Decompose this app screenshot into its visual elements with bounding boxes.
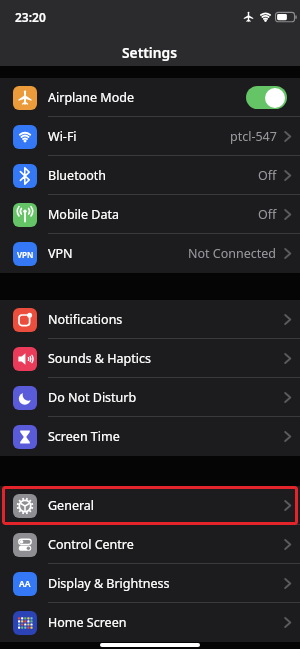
staticText: Off [258,167,277,184]
staticText: Not Connected [188,245,277,262]
staticText: VPN [48,245,73,262]
staticText: General [48,497,95,514]
staticText: 23:20 [15,9,46,25]
staticText: Sounds & Haptics [48,350,151,367]
button[interactable]: Screen Time [0,417,300,456]
staticText: VPN [17,249,34,260]
button[interactable]: General [0,486,300,525]
staticText: Control Centre [48,536,134,553]
button[interactable]: AA [0,564,300,603]
staticText: Display & Brightness [48,575,170,592]
staticText: Settings [122,43,178,62]
staticText: Notifications [48,311,123,328]
staticText: Off [258,206,277,223]
staticText: Airplane Mode [48,89,134,106]
button[interactable]: Notifications [0,300,300,339]
button[interactable]: Home Screen [0,603,300,642]
button[interactable]: Mobile Data [0,195,300,234]
button[interactable]: Wi-Fi [0,117,300,156]
button[interactable]: Do Not Disturb [0,378,300,417]
button[interactable]: Control Centre [0,525,300,564]
staticText: AA [19,578,31,590]
button[interactable]: VPN [0,234,300,273]
staticText: Do Not Disturb [48,389,137,406]
staticText: Wi-Fi [48,128,77,145]
button[interactable]: Airplane Mode [0,78,300,117]
staticText: ptcl-547 [230,128,277,145]
button[interactable] [246,86,287,109]
staticText: Screen Time [48,428,120,445]
button[interactable]: Bluetooth [0,156,300,195]
button[interactable]: Sounds & Haptics [0,339,300,378]
staticText: Mobile Data [48,206,120,223]
staticText: Home Screen [48,614,127,631]
staticText: Bluetooth [48,167,107,184]
